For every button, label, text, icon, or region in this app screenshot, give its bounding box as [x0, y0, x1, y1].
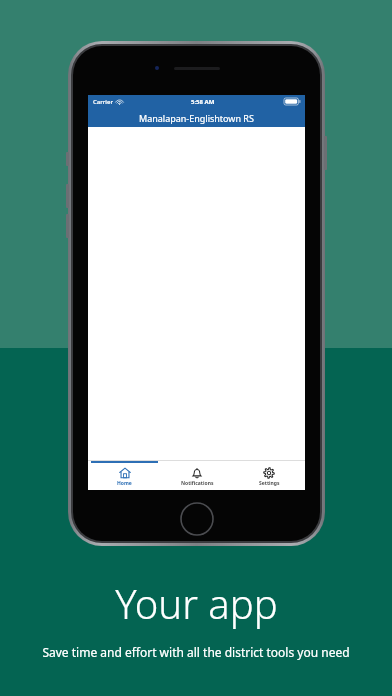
staticText: Notifications — [181, 480, 214, 487]
staticText: Save time and effort with all the distri… — [42, 644, 350, 660]
button[interactable]: Notifications — [161, 461, 233, 490]
staticText: Manalapan-Englishtown RS — [139, 112, 254, 124]
button[interactable]: Settings — [233, 461, 305, 490]
staticText: Settings — [259, 480, 280, 487]
staticText: 5:58 AM — [191, 98, 215, 106]
button[interactable]: Home — [88, 461, 161, 490]
staticText: Your app — [115, 576, 278, 630]
staticText: Home — [117, 480, 132, 487]
staticText: Carrier — [93, 98, 113, 106]
